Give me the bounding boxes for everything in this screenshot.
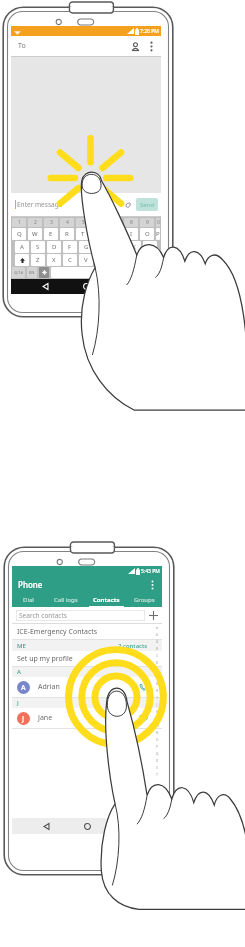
button[interactable]: More options (145, 577, 160, 592)
staticText: D (52, 243, 57, 251)
button[interactable]: E (44, 228, 58, 240)
button[interactable]: X (47, 254, 61, 266)
staticText: J (22, 714, 25, 724)
staticText: Set up my profile (17, 654, 73, 664)
button[interactable]: 2 (28, 218, 42, 227)
staticText: 7:26 PM (140, 28, 159, 35)
button[interactable]: W (28, 228, 42, 240)
button[interactable]: More options (143, 38, 159, 54)
staticText: # (154, 632, 160, 637)
button[interactable]: ICE-Emergency Contacts (12, 624, 162, 639)
staticText: M (131, 256, 137, 264)
button[interactable]: Dial (12, 593, 45, 607)
button[interactable]: Home (78, 279, 94, 294)
button[interactable]: M (127, 254, 141, 266)
button[interactable]: A (12, 677, 162, 697)
button[interactable]: 7 (108, 218, 122, 227)
button[interactable]: J (12, 708, 162, 728)
button[interactable]: Call Adrian (136, 680, 150, 694)
button[interactable]: Back (38, 818, 54, 834)
button[interactable]: Send (136, 198, 158, 211)
button[interactable]: 3 (44, 218, 58, 227)
staticText: N (154, 730, 160, 735)
button[interactable]: Back (37, 279, 53, 294)
button[interactable]: Shift (15, 254, 29, 266)
staticText: ME (17, 642, 26, 650)
staticText: F (154, 674, 160, 679)
staticText: 4 (66, 219, 69, 226)
button[interactable]: Contacts (86, 593, 127, 607)
button[interactable]: 4 (60, 218, 74, 227)
button[interactable]: V (79, 254, 93, 266)
staticText: 0 (157, 219, 160, 226)
staticText: A (20, 243, 24, 251)
button[interactable]: 5 (76, 218, 90, 227)
button[interactable]: Z (31, 254, 45, 266)
button[interactable]: Call Jane (136, 711, 150, 725)
button[interactable]: T (76, 228, 90, 240)
staticText: Z (36, 256, 40, 264)
button[interactable]: Groups (127, 593, 162, 607)
staticText: H (154, 688, 160, 693)
staticText: L (154, 716, 160, 721)
button[interactable]: L (143, 241, 157, 253)
button[interactable]: Attach (120, 197, 136, 213)
staticText: Jane (38, 713, 53, 723)
button[interactable]: Add recipient (127, 38, 143, 54)
staticText: Send (140, 201, 155, 209)
button[interactable]: Search contacts (16, 610, 145, 621)
button[interactable]: 0 (156, 218, 160, 227)
button[interactable]: 9 (140, 218, 154, 227)
button[interactable]: O (140, 228, 154, 240)
button[interactable]: Set up my profile (12, 651, 162, 666)
staticText: M (154, 723, 160, 728)
staticText: E (49, 230, 53, 238)
button[interactable]: 1 (12, 218, 26, 227)
button[interactable]: D (47, 241, 61, 253)
button[interactable]: Enter (144, 267, 160, 278)
staticText: J (154, 702, 160, 707)
button[interactable]: Settings (39, 267, 49, 278)
button[interactable]: Add contact (145, 607, 161, 623)
button[interactable]: 8 (124, 218, 138, 227)
staticText: 1 (18, 219, 21, 226)
button[interactable]: S (31, 241, 45, 253)
staticText: F (68, 243, 72, 251)
button[interactable]: B (95, 254, 109, 266)
button[interactable]: A (15, 241, 29, 253)
button[interactable]: Q (12, 228, 26, 240)
button[interactable]: K (127, 241, 141, 253)
button[interactable]: C (63, 254, 77, 266)
button[interactable]: Enter message (11, 193, 120, 216)
staticText: K (132, 243, 136, 251)
button[interactable]: Home (79, 818, 95, 834)
staticText: EN (29, 270, 35, 275)
staticText: Q (154, 751, 160, 756)
staticText: W (32, 230, 38, 238)
button[interactable]: P (156, 228, 160, 240)
button[interactable]: G (79, 241, 93, 253)
button[interactable]: ME (12, 640, 162, 651)
button[interactable]: Call logs (45, 593, 86, 607)
button[interactable]: ☺1# (12, 267, 25, 278)
button[interactable]: F (63, 241, 77, 253)
staticText: R (65, 230, 69, 238)
staticText: G (84, 243, 89, 251)
staticText: O (154, 737, 160, 742)
button[interactable]: EN (27, 267, 37, 278)
button[interactable]: I (124, 228, 138, 240)
button[interactable]: Space (51, 267, 142, 278)
button[interactable]: R (60, 228, 74, 240)
